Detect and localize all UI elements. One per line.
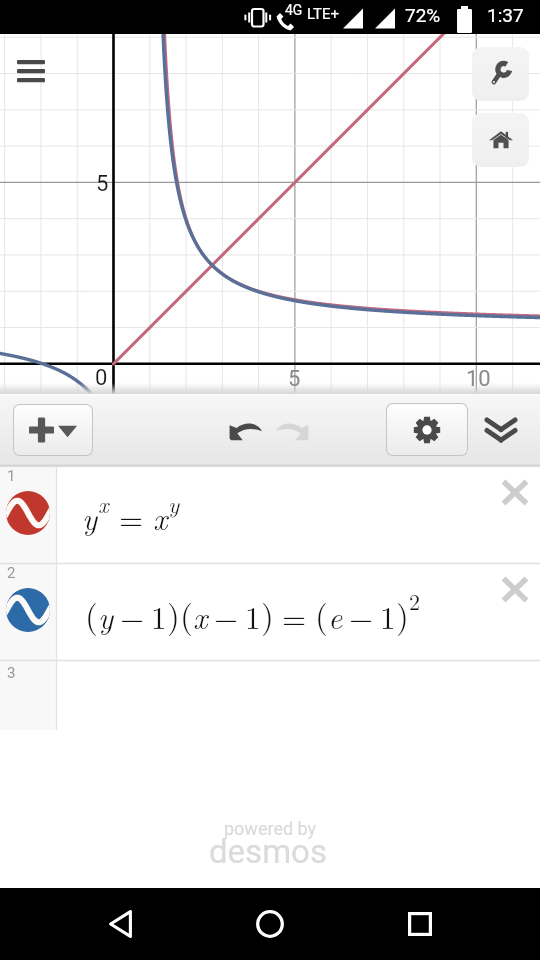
staticText: 0 bbox=[95, 365, 108, 391]
staticText: ) bbox=[261, 591, 274, 638]
staticText: = bbox=[282, 594, 307, 638]
staticText: 4G bbox=[285, 2, 303, 18]
staticText: ( bbox=[180, 591, 193, 638]
staticText: powered by bbox=[224, 818, 317, 839]
staticText: 10 bbox=[466, 366, 491, 392]
staticText: 1:37 bbox=[487, 4, 524, 26]
button[interactable]: Toggle plot 2 bbox=[6, 588, 50, 632]
staticText: y bbox=[168, 487, 180, 520]
staticText: 72% bbox=[405, 4, 441, 26]
staticText: 1 bbox=[7, 467, 16, 485]
staticText: 2 bbox=[7, 564, 16, 582]
button[interactable]: Collapse graph bbox=[476, 405, 526, 455]
button[interactable]: 1 bbox=[0, 466, 540, 563]
button[interactable]: Redo bbox=[267, 405, 317, 455]
staticText: 2 bbox=[409, 585, 421, 616]
button[interactable]: Undo bbox=[220, 405, 270, 455]
button[interactable]: Delete expression 2 bbox=[494, 568, 536, 610]
button[interactable]: Back bbox=[96, 900, 144, 948]
button[interactable]: 2 bbox=[0, 563, 540, 660]
staticText: e bbox=[328, 594, 343, 638]
staticText: y bbox=[98, 594, 114, 638]
staticText: y bbox=[82, 495, 98, 539]
staticText: x bbox=[193, 594, 208, 638]
button[interactable]: Home bbox=[472, 113, 529, 167]
button[interactable]: Home bbox=[246, 900, 294, 948]
staticText: − bbox=[349, 594, 374, 638]
staticText: 5 bbox=[288, 366, 301, 392]
staticText: ( bbox=[315, 591, 328, 638]
staticText: x bbox=[153, 495, 168, 539]
staticText: 1 bbox=[245, 594, 261, 638]
staticText: − bbox=[214, 594, 239, 638]
button[interactable]: Toggle plot 1 bbox=[6, 491, 50, 535]
staticText: ) bbox=[167, 591, 180, 638]
staticText: 1 bbox=[380, 594, 396, 638]
staticText: 1 bbox=[151, 594, 167, 638]
staticText: = bbox=[119, 495, 144, 539]
staticText: ( bbox=[85, 591, 98, 638]
staticText: 3 bbox=[7, 664, 16, 682]
button[interactable]: Delete expression 1 bbox=[494, 471, 536, 513]
staticText: x bbox=[98, 487, 109, 520]
staticText: LTE+ bbox=[307, 5, 340, 23]
staticText: ) bbox=[396, 591, 409, 638]
button[interactable]: Menu bbox=[8, 48, 54, 94]
staticText: 5 bbox=[96, 171, 109, 197]
button[interactable]: Graph settings bbox=[386, 403, 468, 456]
button[interactable]: Graph tools bbox=[472, 47, 529, 101]
staticText: − bbox=[120, 594, 145, 638]
staticText: desmos bbox=[209, 832, 327, 871]
button[interactable]: Recent apps bbox=[396, 900, 444, 948]
button[interactable]: Add expression bbox=[13, 404, 93, 456]
